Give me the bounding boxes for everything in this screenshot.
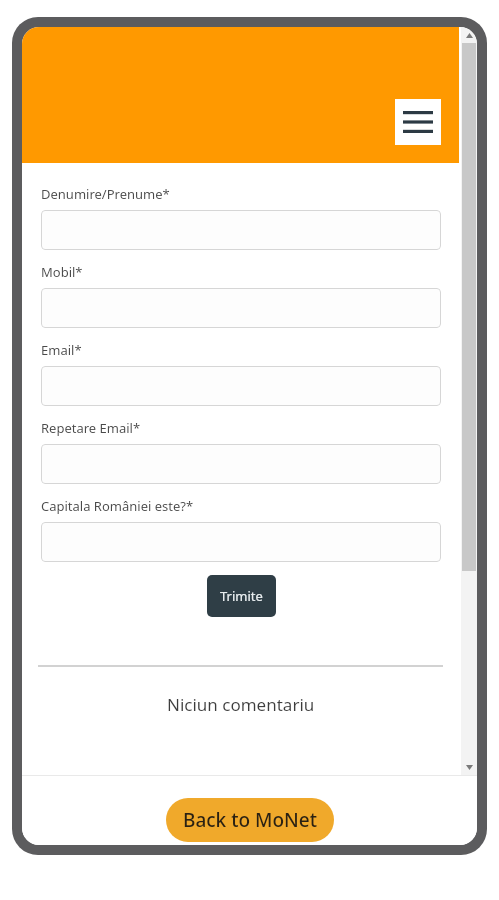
button[interactable] <box>41 444 441 484</box>
staticText: Mobil* <box>41 263 83 281</box>
staticText: Niciun comentariu <box>167 693 315 716</box>
button[interactable] <box>41 522 441 562</box>
staticText: Back to MoNet <box>183 807 317 833</box>
staticText: Email* <box>41 341 82 359</box>
button[interactable]: Menu <box>395 99 441 145</box>
staticText: Capitala României este?* <box>41 497 194 515</box>
staticText: Denumire/Prenume* <box>41 185 170 203</box>
button[interactable]: Trimite <box>207 575 276 617</box>
button[interactable]: Back to MoNet <box>166 798 334 842</box>
staticText: Trimite <box>220 587 263 605</box>
button[interactable]: Scroll down <box>461 759 477 775</box>
staticText: Repetare Email* <box>41 419 141 437</box>
button[interactable]: Scroll up <box>461 27 477 43</box>
button[interactable] <box>41 210 441 250</box>
button[interactable] <box>41 366 441 406</box>
button[interactable] <box>41 288 441 328</box>
